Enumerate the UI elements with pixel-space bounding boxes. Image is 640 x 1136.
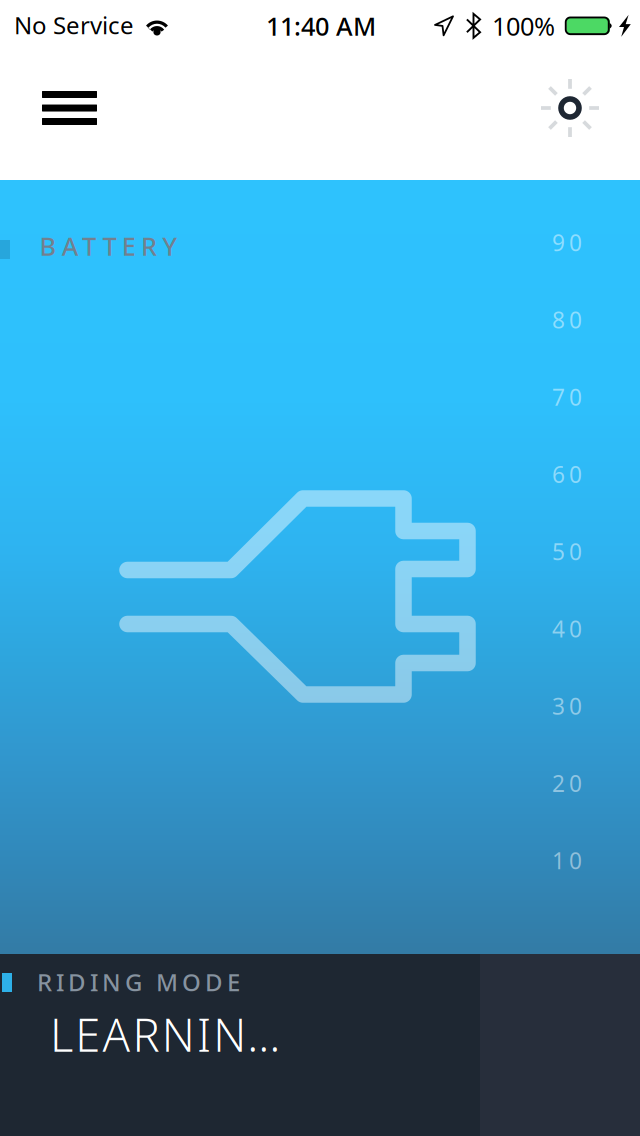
staticText: No Service <box>14 9 134 41</box>
staticText: 80 <box>552 305 582 335</box>
staticText: 11:40 AM <box>266 9 376 43</box>
staticText: 60 <box>552 459 582 489</box>
button[interactable]: Brightness <box>510 40 640 180</box>
staticText: 10 <box>552 845 582 875</box>
staticText: 30 <box>552 691 582 721</box>
staticText: RIDING MODE <box>37 966 240 998</box>
staticText: LEARNING <box>50 1004 281 1064</box>
staticText: 100% <box>492 9 555 43</box>
staticText: 70 <box>552 382 582 412</box>
staticText: BATTERY <box>39 229 177 263</box>
staticText: 40 <box>552 614 582 644</box>
button[interactable]: Menu <box>0 40 130 180</box>
staticText: 90 <box>552 227 582 257</box>
staticText: 50 <box>552 536 582 566</box>
staticText: 20 <box>552 768 582 798</box>
